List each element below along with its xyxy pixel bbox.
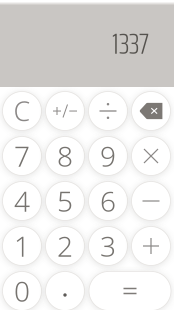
staticText: 9 [100,137,116,175]
staticText: 0 [14,272,30,310]
button[interactable]: 8 [45,136,84,175]
staticText: 8 [57,137,73,175]
button[interactable]: Divide [88,91,127,130]
button[interactable]: Minus [131,181,170,220]
button[interactable]: 1 [2,226,41,265]
staticText: 1 [14,227,30,265]
button[interactable]: Decimal point [45,271,84,310]
staticText: 4 [14,182,30,220]
button[interactable]: 0 [2,271,41,310]
staticText: 5 [57,182,73,220]
button[interactable]: 9 [88,136,127,175]
button[interactable]: 5 [45,181,84,220]
staticText: C [13,93,30,129]
button[interactable]: Plus minus [45,91,84,130]
button[interactable]: Clear [2,91,41,130]
staticText: 3 [100,227,116,265]
button[interactable]: 4 [2,181,41,220]
button[interactable]: 6 [88,181,127,220]
button[interactable]: Multiply [131,136,170,175]
button[interactable]: Equals [89,271,171,310]
button[interactable]: 2 [45,226,84,265]
button[interactable]: Plus [131,226,170,265]
staticText: 6 [100,182,116,220]
button[interactable]: 3 [88,226,127,265]
staticText: 7 [14,137,30,175]
staticText: 2 [57,227,73,265]
button[interactable]: 7 [2,136,41,175]
button[interactable]: Delete [131,91,170,130]
staticText: 1337 [112,20,149,67]
